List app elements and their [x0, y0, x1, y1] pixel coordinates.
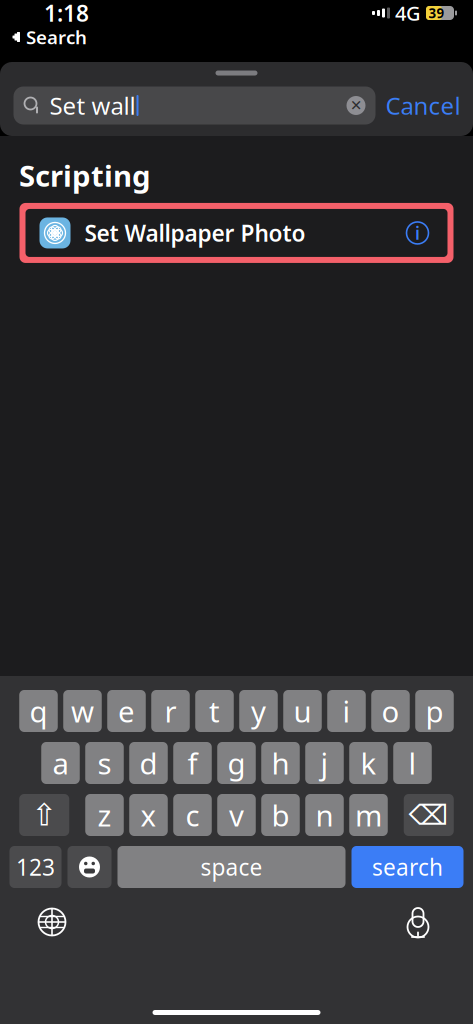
staticText: g	[227, 743, 245, 782]
button[interactable]: Next keyboard	[38, 908, 66, 936]
staticText: 39	[428, 4, 444, 22]
staticText: y	[251, 691, 266, 730]
staticText: Set wall	[49, 90, 135, 121]
staticText: ⇧	[31, 798, 57, 832]
button[interactable]: a	[41, 742, 80, 784]
staticText: p	[425, 691, 443, 730]
button[interactable]: Set wall	[13, 86, 375, 124]
button[interactable]: g	[217, 742, 256, 784]
button[interactable]: c	[173, 794, 212, 836]
button[interactable]: o	[371, 690, 410, 732]
button[interactable]: Delete	[404, 794, 454, 836]
button[interactable]: Search	[0, 26, 95, 48]
button[interactable]: d	[129, 742, 168, 784]
staticText: Set Wallpaper Photo	[84, 218, 305, 248]
button[interactable]: Shift	[19, 794, 69, 836]
button[interactable]: r	[151, 690, 190, 732]
staticText: l	[408, 743, 416, 782]
staticText: j	[320, 743, 328, 782]
staticText: ⌫	[409, 799, 449, 831]
staticText: i	[415, 221, 420, 244]
staticText: search	[372, 852, 443, 882]
button[interactable]: u	[283, 690, 322, 732]
staticText: Search	[26, 25, 87, 49]
button[interactable]: e	[107, 690, 146, 732]
staticText: o	[381, 691, 399, 730]
button[interactable]: h	[261, 742, 300, 784]
staticText: h	[271, 743, 289, 782]
button[interactable]: search	[351, 846, 463, 888]
button[interactable]: q	[19, 690, 58, 732]
staticText: Scripting	[19, 156, 151, 195]
staticText: z	[97, 795, 111, 834]
staticText: a	[52, 743, 68, 782]
button[interactable]: k	[349, 742, 388, 784]
button[interactable]: s	[85, 742, 124, 784]
staticText: w	[71, 691, 94, 730]
button[interactable]: l	[393, 742, 432, 784]
button[interactable]: b	[261, 794, 300, 836]
button[interactable]: z	[85, 794, 124, 836]
button[interactable]: Cancel	[375, 86, 470, 124]
staticText: Cancel	[385, 90, 460, 121]
button[interactable]: p	[415, 690, 454, 732]
staticText: e	[118, 691, 135, 730]
staticText: r	[164, 691, 176, 730]
button[interactable]: i	[327, 690, 366, 732]
staticText: k	[360, 743, 376, 782]
staticText: space	[200, 852, 262, 882]
staticText: f	[187, 743, 197, 782]
button[interactable]: f	[173, 742, 212, 784]
staticText: q	[29, 691, 47, 730]
button[interactable]: Set Wallpaper Photo	[19, 203, 453, 263]
button[interactable]: Dictate	[403, 906, 433, 938]
staticText: d	[139, 743, 157, 782]
button[interactable]: m	[349, 794, 388, 836]
button[interactable]: 123	[9, 846, 61, 888]
button[interactable]: y	[239, 690, 278, 732]
staticText: b	[271, 795, 289, 834]
staticText: c	[185, 795, 199, 834]
button[interactable]: x	[129, 794, 168, 836]
button[interactable]: t	[195, 690, 234, 732]
staticText: u	[293, 691, 311, 730]
staticText: 4G	[395, 0, 421, 26]
staticText: 123	[16, 852, 55, 882]
staticText: t	[209, 691, 220, 730]
button[interactable]: v	[217, 794, 256, 836]
staticText: m	[355, 795, 382, 834]
staticText: s	[97, 743, 111, 782]
staticText: 1:18	[44, 0, 89, 28]
button[interactable]: space	[117, 846, 345, 888]
staticText: v	[229, 795, 244, 834]
staticText: i	[342, 691, 350, 730]
staticText: x	[140, 795, 156, 834]
staticText: ✕	[350, 97, 362, 114]
button[interactable]: n	[305, 794, 344, 836]
staticText: n	[315, 795, 333, 834]
button[interactable]: j	[305, 742, 344, 784]
button[interactable]: Emoji	[67, 846, 111, 888]
button[interactable]: w	[63, 690, 102, 732]
